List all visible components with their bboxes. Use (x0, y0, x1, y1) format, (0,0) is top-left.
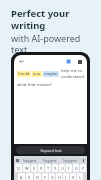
button[interactable]: Suggest (20, 156, 40, 164)
button[interactable]: U (59, 164, 65, 172)
staticText: U (61, 166, 64, 171)
staticText: Suggest (43, 158, 57, 163)
staticText: D (36, 175, 39, 180)
staticText: T (47, 166, 50, 171)
staticText: H (58, 175, 61, 180)
staticText: I (68, 166, 70, 171)
button[interactable]: P (80, 164, 86, 172)
button[interactable]: Expand text (16, 146, 85, 154)
staticText: Q (17, 166, 20, 171)
button[interactable]: F (42, 173, 48, 180)
staticText: maybe (44, 71, 58, 77)
staticText: with AI-powered text improvements (11, 32, 91, 66)
button[interactable]: Clipboard (15, 156, 20, 164)
staticText: R (40, 166, 43, 171)
staticText: you (33, 71, 41, 77)
staticText: G (51, 175, 54, 180)
staticText: J (65, 175, 67, 180)
staticText: O (75, 166, 78, 171)
button[interactable]: AI writing assist (64, 57, 73, 66)
staticText: Suggest (63, 158, 77, 163)
staticText: A (20, 175, 23, 180)
button[interactable]: Y (52, 164, 58, 172)
button[interactable]: T (45, 164, 51, 172)
button[interactable]: R (38, 164, 44, 172)
button[interactable]: S (26, 173, 33, 180)
staticText: P (82, 166, 85, 171)
button[interactable]: Suggest (40, 156, 60, 164)
button[interactable]: Q (15, 164, 22, 172)
button[interactable]: A (18, 173, 25, 180)
button[interactable]: J (63, 173, 69, 180)
button[interactable]: Back (17, 57, 26, 66)
staticText: S (28, 175, 31, 180)
staticText: Could (18, 71, 30, 77)
staticText: what that means? (17, 82, 52, 88)
button[interactable]: E (31, 164, 37, 172)
button[interactable]: L (77, 173, 83, 180)
button[interactable]: I (66, 164, 72, 172)
staticText: F (44, 175, 46, 180)
staticText: W (25, 166, 29, 171)
staticText: help me to understand (61, 68, 84, 80)
staticText: L (79, 175, 81, 180)
button[interactable]: K (70, 173, 76, 180)
staticText: Suggest (23, 158, 37, 163)
staticText: Expand text (40, 148, 62, 153)
staticText: K (72, 175, 75, 180)
button[interactable]: H (56, 173, 62, 180)
button[interactable]: W (23, 164, 30, 172)
button[interactable]: Suggest (60, 156, 80, 164)
button[interactable]: O (73, 164, 79, 172)
button[interactable]: Voice input (80, 156, 86, 164)
staticText: Y (54, 166, 57, 171)
button[interactable]: D (34, 173, 41, 180)
staticText: Perfect your writing (11, 7, 91, 31)
button[interactable]: More options (75, 57, 84, 66)
button[interactable]: G (49, 173, 55, 180)
staticText: E (33, 166, 36, 171)
